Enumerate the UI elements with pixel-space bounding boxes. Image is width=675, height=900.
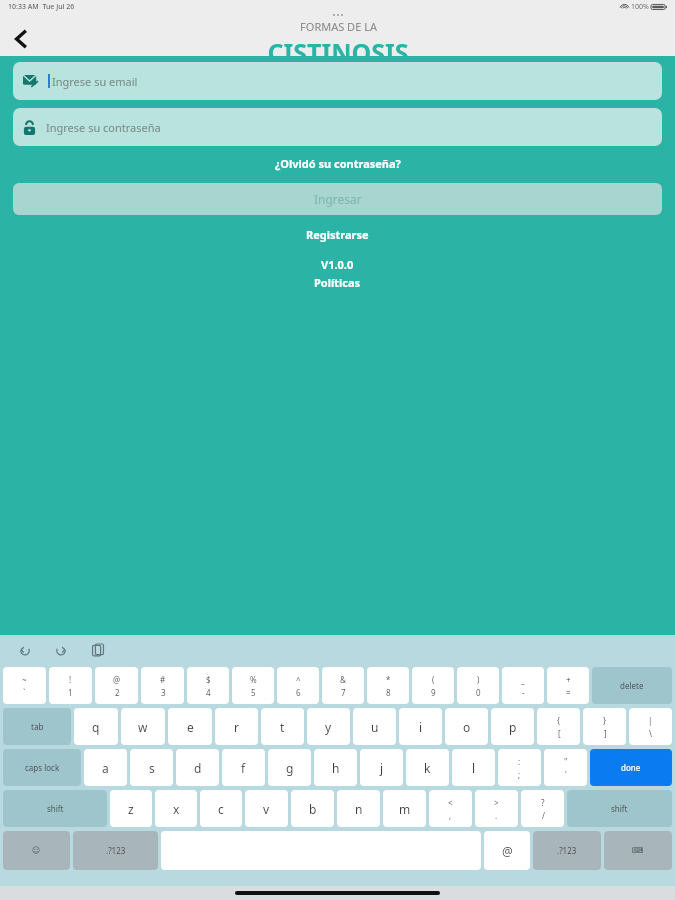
staticText: ]	[604, 728, 607, 739]
button[interactable]: n	[337, 790, 380, 827]
staticText: f	[241, 760, 246, 776]
button[interactable]: Back	[4, 22, 38, 56]
staticText: r	[234, 719, 239, 735]
staticText: 0	[476, 687, 481, 698]
button[interactable]: b	[291, 790, 334, 827]
button[interactable]: caps lock	[3, 749, 81, 786]
staticText: @	[113, 674, 121, 685]
button[interactable]: s	[130, 749, 173, 786]
staticText: q	[92, 719, 100, 735]
staticText: #	[160, 674, 166, 685]
button[interactable]: @	[95, 667, 138, 704]
staticText: /	[542, 810, 545, 821]
staticText: b	[309, 801, 317, 817]
button[interactable]: y	[307, 708, 350, 745]
button[interactable]: Ingrese su email	[13, 62, 662, 100]
staticText: <	[448, 797, 453, 808]
button[interactable]: Ingresar	[13, 183, 662, 215]
button[interactable]: @	[484, 831, 530, 870]
staticText: 7	[341, 687, 346, 698]
button[interactable]: :	[498, 749, 541, 786]
button[interactable]: ?	[521, 790, 564, 827]
staticText: Ingrese su email	[52, 74, 138, 89]
button[interactable]: .?123	[73, 831, 158, 870]
button[interactable]: ¿Olvidó su contraseña?	[0, 156, 675, 171]
button[interactable]: _	[502, 667, 544, 704]
button[interactable]: }	[583, 708, 626, 745]
button[interactable]: x	[155, 790, 197, 827]
button[interactable]: j	[360, 749, 403, 786]
staticText: ~	[22, 674, 27, 685]
button[interactable]: delete	[592, 667, 672, 704]
button[interactable]: Ingrese su contraseña	[13, 108, 662, 146]
button[interactable]: c	[200, 790, 242, 827]
button[interactable]: +	[547, 667, 589, 704]
button[interactable]: h	[314, 749, 357, 786]
button[interactable]: m	[383, 790, 426, 827]
button[interactable]: shift	[3, 790, 107, 827]
staticText: w	[138, 719, 148, 735]
button[interactable]: a	[84, 749, 127, 786]
button[interactable]: e	[168, 708, 212, 745]
button[interactable]: !	[49, 667, 92, 704]
button[interactable]: *	[367, 667, 409, 704]
staticText: :	[518, 756, 521, 767]
staticText: %	[250, 674, 257, 685]
staticText: 2	[115, 687, 120, 698]
button[interactable]: d	[176, 749, 219, 786]
button[interactable]: >	[475, 790, 518, 827]
button[interactable]: u	[353, 708, 396, 745]
button[interactable]: &	[322, 667, 364, 704]
button[interactable]: t	[261, 708, 304, 745]
staticText: Políticas	[314, 275, 361, 290]
button[interactable]: <	[429, 790, 472, 827]
staticText: ¿Olvidó su contraseña?	[275, 156, 401, 171]
button[interactable]: g	[268, 749, 311, 786]
button[interactable]: (	[412, 667, 454, 704]
staticText: n	[355, 801, 363, 817]
button[interactable]: o	[445, 708, 488, 745]
button[interactable]: tab	[3, 708, 71, 745]
button[interactable]: done	[590, 749, 672, 786]
button[interactable]: i	[399, 708, 442, 745]
button[interactable]: ~	[3, 667, 46, 704]
button[interactable]: shift	[567, 790, 672, 827]
staticText: caps lock	[25, 762, 60, 773]
staticText: 9	[431, 687, 436, 698]
staticText: -	[522, 687, 525, 698]
button[interactable]: ⌨	[604, 831, 672, 870]
button[interactable]: Registrarse	[0, 227, 675, 242]
staticText: h	[332, 760, 340, 776]
staticText: t	[280, 719, 285, 735]
button[interactable]: |	[629, 708, 672, 745]
staticText: |	[648, 715, 653, 726]
button[interactable]: #	[141, 667, 184, 704]
button[interactable]: z	[110, 790, 152, 827]
staticText: g	[286, 760, 294, 776]
button[interactable]: Redo	[50, 639, 72, 661]
staticText: _	[521, 674, 525, 685]
button[interactable]: r	[215, 708, 258, 745]
staticText: *	[386, 674, 391, 685]
button[interactable]: Undo	[14, 639, 36, 661]
button[interactable]: "	[544, 749, 587, 786]
button[interactable]: {	[537, 708, 580, 745]
button[interactable]: k	[406, 749, 449, 786]
button[interactable]: ☺	[3, 831, 70, 870]
button[interactable]: %	[232, 667, 274, 704]
button[interactable]: l	[452, 749, 495, 786]
button[interactable]: ^	[277, 667, 319, 704]
button[interactable]: p	[491, 708, 534, 745]
button[interactable]: f	[222, 749, 265, 786]
button[interactable]: .?123	[533, 831, 601, 870]
staticText: \	[649, 728, 652, 739]
button[interactable]: Políticas	[0, 275, 675, 290]
button[interactable]: $	[187, 667, 229, 704]
button[interactable]: w	[121, 708, 165, 745]
staticText: ?	[541, 797, 545, 808]
button[interactable]: )	[457, 667, 499, 704]
button[interactable]: v	[245, 790, 288, 827]
button[interactable]: Paste	[86, 639, 108, 661]
button[interactable]: q	[74, 708, 118, 745]
